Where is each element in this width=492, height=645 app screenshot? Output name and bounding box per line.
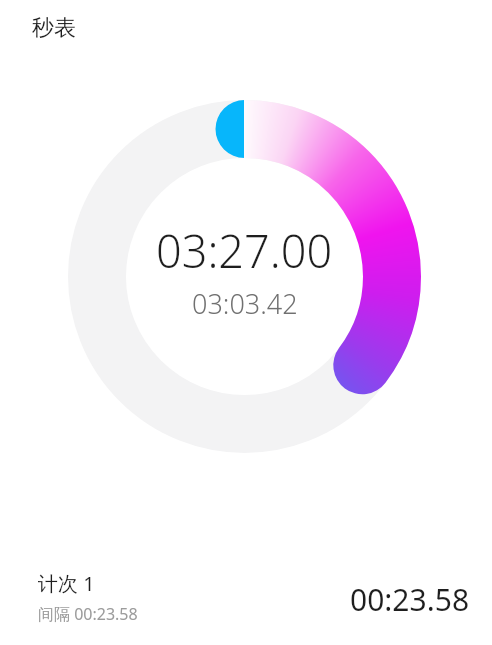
button[interactable]: 秒表: [26, 8, 82, 48]
button[interactable]: Stopwatch dial: [68, 100, 421, 453]
staticText: 计次 1: [38, 570, 95, 597]
staticText: 03:03.42: [192, 285, 298, 322]
staticText: 秒表: [32, 14, 76, 42]
staticText: 00:23.58: [350, 579, 470, 620]
staticText: 间隔 00:23.58: [38, 603, 138, 625]
button[interactable]: 计次 1: [0, 570, 492, 645]
staticText: 03:27.00: [156, 220, 333, 281]
